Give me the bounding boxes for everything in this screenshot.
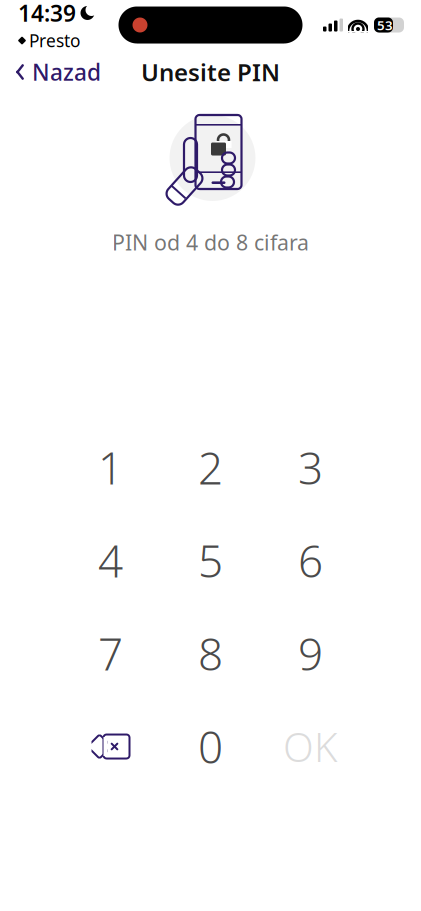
button[interactable]: 5 xyxy=(160,514,260,607)
button[interactable]: Obriši xyxy=(60,700,160,793)
button[interactable]: Nazad xyxy=(0,49,101,95)
staticText: PIN od 4 do 8 cifara xyxy=(112,228,309,256)
staticText: 5 xyxy=(198,531,223,590)
button[interactable]: 4 xyxy=(60,514,160,607)
staticText: Presto xyxy=(29,29,80,52)
staticText: 7 xyxy=(98,624,123,683)
staticText: 1 xyxy=(98,438,123,497)
staticText: Unesite PIN xyxy=(141,56,280,88)
button[interactable]: OK xyxy=(260,700,360,793)
staticText: 8 xyxy=(198,624,223,683)
staticText: 3 xyxy=(298,438,323,497)
button[interactable]: 1 xyxy=(60,421,160,514)
button[interactable]: 3 xyxy=(260,421,360,514)
staticText: Nazad xyxy=(32,57,101,87)
button[interactable]: 9 xyxy=(260,607,360,700)
button[interactable]: 0 xyxy=(160,700,260,793)
staticText: 6 xyxy=(298,531,323,590)
button[interactable]: 8 xyxy=(160,607,260,700)
staticText: 9 xyxy=(298,624,323,683)
button[interactable]: 2 xyxy=(160,421,260,514)
staticText: OK xyxy=(283,720,338,773)
button[interactable]: 6 xyxy=(260,514,360,607)
staticText: 4 xyxy=(98,531,123,590)
staticText: 0 xyxy=(198,717,223,776)
button[interactable]: 7 xyxy=(60,607,160,700)
staticText: 53 xyxy=(377,16,393,34)
staticText: 14:39 xyxy=(18,0,76,28)
staticText: 2 xyxy=(198,438,223,497)
